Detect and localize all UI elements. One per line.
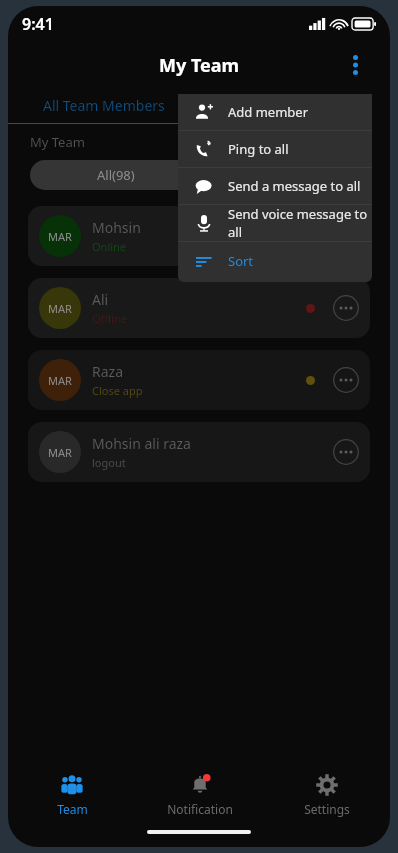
button[interactable]: Send a message to all	[178, 168, 372, 204]
staticText: Mohsin ali raza	[92, 434, 191, 453]
button[interactable]: All(98)	[30, 160, 202, 190]
staticText: All(98)	[97, 166, 135, 184]
button[interactable]: Ping to all	[178, 131, 372, 167]
button[interactable]: MAR	[28, 206, 370, 266]
button[interactable]: Member options for Raza	[333, 367, 359, 393]
staticText: My Team	[30, 133, 85, 151]
staticText: Settings	[304, 801, 350, 817]
staticText: MAR	[48, 229, 72, 244]
button[interactable]: All Team Members	[8, 88, 199, 123]
staticText: Ping to all	[228, 140, 289, 158]
staticText: All Team Members	[43, 96, 165, 115]
button[interactable]: Member options for Ali	[333, 295, 359, 321]
staticText: Close app	[92, 383, 143, 398]
button[interactable]: Add member	[178, 94, 372, 130]
button[interactable]: Sort	[178, 242, 372, 279]
button[interactable]: MAR	[28, 350, 370, 410]
staticText: Offline	[92, 311, 127, 326]
staticText: 9:41	[22, 13, 54, 35]
staticText: Ali	[92, 290, 109, 309]
staticText: Sort	[228, 252, 254, 270]
button[interactable]: Member options for Mohsin ali raza	[333, 439, 359, 465]
button[interactable]: Settings	[263, 772, 390, 817]
staticText: Raza	[92, 362, 123, 381]
staticText: Online	[92, 239, 127, 254]
staticText: Notification	[167, 801, 233, 817]
staticText: Team	[57, 801, 88, 817]
button[interactable]: MAR	[28, 422, 370, 482]
staticText: logout	[92, 455, 126, 470]
button[interactable]: MAR	[28, 278, 370, 338]
staticText: Add member	[228, 103, 309, 121]
staticText: MAR	[48, 445, 72, 460]
staticText: MAR	[48, 301, 72, 316]
staticText: MAR	[48, 373, 72, 388]
button[interactable]: More options	[342, 52, 368, 78]
button[interactable]: Team	[8, 772, 136, 817]
staticText: Mohsin	[92, 218, 141, 237]
button[interactable]: Send voice message to all	[178, 205, 372, 241]
staticText: My Team	[159, 53, 240, 78]
staticText: Send a message to all	[228, 177, 361, 195]
staticText: Send voice message to all	[228, 205, 372, 241]
button[interactable]: Notification	[136, 772, 263, 817]
